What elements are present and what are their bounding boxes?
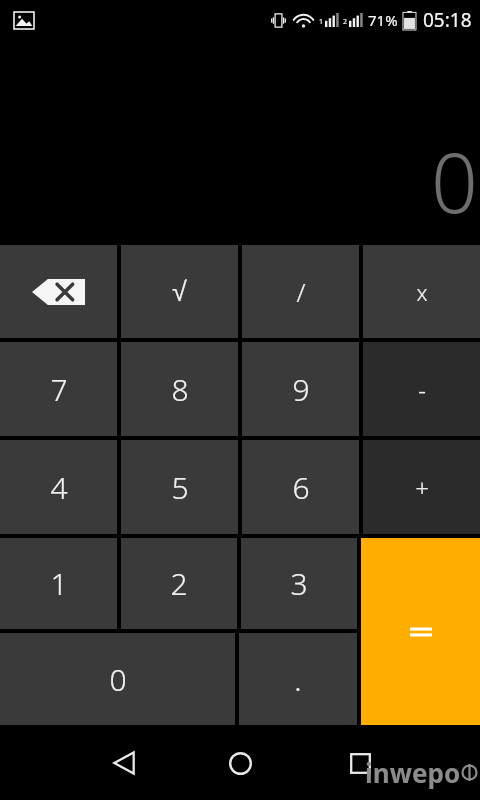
button[interactable]: Backspace [0, 245, 117, 338]
staticText: 0 [431, 125, 478, 237]
staticText: x [416, 277, 428, 307]
button[interactable]: Back [100, 739, 148, 787]
staticText: - [418, 373, 426, 406]
button[interactable]: 2 [121, 538, 237, 629]
button[interactable]: 3 [241, 538, 357, 629]
staticText: 6 [292, 467, 310, 508]
staticText: 8 [171, 369, 189, 410]
staticText: 05:18 [423, 7, 472, 33]
button[interactable]: Equals [361, 538, 480, 725]
button[interactable]: 0 [0, 633, 235, 725]
staticText: 2 [170, 563, 188, 604]
staticText: 3 [290, 563, 308, 604]
button[interactable]: Home [216, 739, 264, 787]
button[interactable]: 8 [121, 342, 238, 436]
button[interactable]: - [363, 342, 480, 436]
staticText: √ [172, 277, 187, 307]
staticText: inwepo [365, 755, 461, 790]
staticText: 9 [292, 369, 310, 410]
staticText: 1 [319, 17, 324, 27]
button[interactable]: 5 [121, 440, 238, 534]
button[interactable]: + [363, 440, 480, 534]
button[interactable]: 9 [242, 342, 359, 436]
staticText: 1 [50, 563, 68, 604]
button[interactable]: √ [121, 245, 238, 338]
staticText: . [294, 659, 302, 700]
button[interactable]: Recents [336, 739, 384, 787]
staticText: 5 [171, 467, 189, 508]
staticText: + [415, 471, 429, 504]
staticText: 71% [368, 10, 398, 30]
button[interactable]: 7 [0, 342, 117, 436]
button[interactable]: 1 [0, 538, 117, 629]
staticText: 7 [50, 369, 68, 410]
staticText: 0 [109, 659, 127, 700]
button[interactable]: 6 [242, 440, 359, 534]
button[interactable]: . [239, 633, 357, 725]
staticText: 4 [50, 467, 68, 508]
button[interactable]: x [363, 245, 480, 338]
button[interactable]: 4 [0, 440, 117, 534]
staticText: 2 [343, 17, 348, 27]
button[interactable]: / [242, 245, 359, 338]
staticText: / [296, 274, 306, 309]
